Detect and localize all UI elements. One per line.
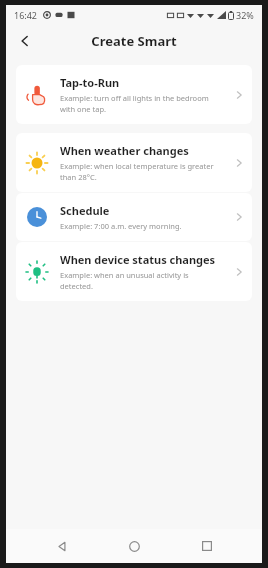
staticText: Example: when an unusual activity is det… <box>60 270 189 291</box>
button[interactable]: Schedule <box>16 193 252 241</box>
staticText: Create Smart <box>91 32 177 50</box>
button[interactable]: When device status changes <box>16 242 252 301</box>
staticText: When device status changes <box>60 252 216 267</box>
button[interactable]: When weather changes <box>16 133 252 192</box>
staticText: Tap-to-Run <box>60 75 120 90</box>
staticText: Example: when local temperature is great… <box>60 161 214 182</box>
staticText: Schedule <box>60 203 110 218</box>
staticText: When weather changes <box>60 143 189 158</box>
button[interactable]: Back <box>45 529 79 563</box>
staticText: Example: turn off all lights in the bedr… <box>60 93 209 114</box>
staticText: 32% <box>236 9 254 21</box>
button[interactable]: Back <box>10 26 40 56</box>
button[interactable]: Recents <box>190 529 224 563</box>
button[interactable]: Tap-to-Run <box>16 65 252 124</box>
staticText: Example: 7:00 a.m. every morning. <box>60 221 182 231</box>
button[interactable]: Home <box>117 529 151 563</box>
staticText: 16:42 <box>14 9 38 21</box>
